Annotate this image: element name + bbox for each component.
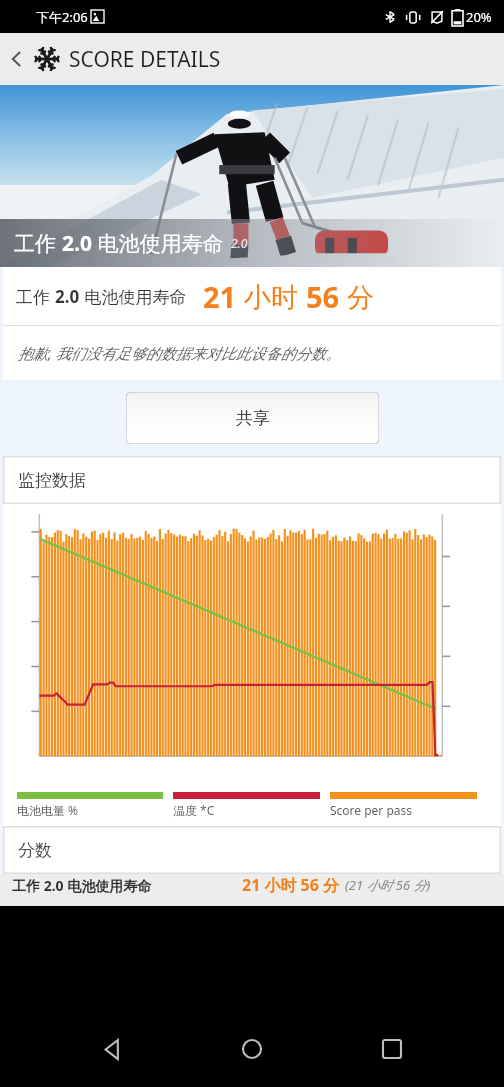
button[interactable]: Recent apps <box>364 1021 420 1077</box>
staticText: 电池使用寿命 <box>92 229 224 258</box>
staticText: 抱歉, 我们没有足够的数据来对比此设备的分数。 <box>18 343 341 363</box>
staticText: 分数 <box>18 840 52 861</box>
staticText: 56 <box>306 277 340 316</box>
staticText: 温度 *C <box>173 802 215 818</box>
staticText: 共享 <box>236 408 270 429</box>
staticText: Score per pass <box>330 802 413 818</box>
button[interactable]: 共享 <box>126 392 379 444</box>
staticText: 工作 2.0 电池使用寿命 <box>12 876 152 895</box>
staticText: SCORE DETAILS <box>69 45 221 74</box>
staticText: 监控数据 <box>18 470 86 491</box>
staticText: 2.0 <box>231 235 248 251</box>
staticText: 分 <box>340 278 375 315</box>
button[interactable]: Back <box>84 1021 140 1077</box>
staticText: 工作 <box>14 229 62 258</box>
staticText: 工作 <box>16 285 55 308</box>
staticText: 21 <box>203 277 237 316</box>
staticText: 小时 <box>237 278 306 315</box>
staticText: (21 小时 56 分) <box>345 876 431 894</box>
staticText: 21 小时 56 分 <box>242 874 340 896</box>
button[interactable]: Back <box>0 42 34 76</box>
staticText: 下午2:06 <box>36 8 88 26</box>
staticText: 2.0 <box>55 285 80 308</box>
staticText: 电池电量 % <box>17 802 79 818</box>
button[interactable]: Home <box>224 1021 280 1077</box>
staticText: 20% <box>466 8 492 26</box>
staticText: 2.0 <box>62 229 92 258</box>
staticText: 电池使用寿命 <box>80 285 187 308</box>
